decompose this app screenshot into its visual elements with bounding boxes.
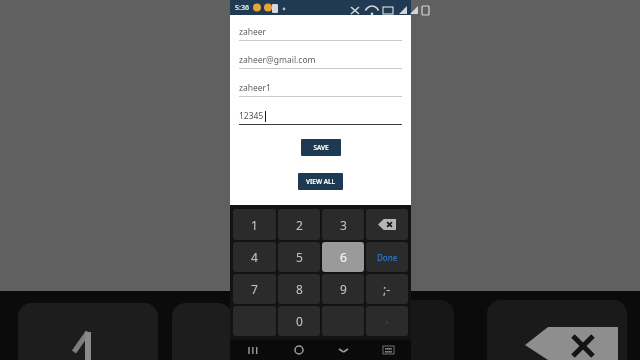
button[interactable]: Home xyxy=(276,340,321,360)
button[interactable]: zaheer@gmail.com xyxy=(239,51,402,69)
button[interactable]: 8 xyxy=(278,274,320,304)
button[interactable]: 9 xyxy=(322,274,364,304)
button[interactable]: 3 xyxy=(322,209,364,240)
button[interactable]: 2 xyxy=(278,209,320,240)
staticText: 6 xyxy=(340,249,347,265)
staticText: 9 xyxy=(340,281,347,297)
staticText: 7 xyxy=(251,281,258,297)
staticText: 4 xyxy=(251,249,258,265)
button[interactable]: ;- xyxy=(366,274,408,304)
button[interactable]: SAVE xyxy=(301,139,341,156)
button[interactable]: Recents xyxy=(230,340,276,360)
staticText: zaheer@gmail.com xyxy=(239,54,316,66)
button[interactable]: 6 xyxy=(322,242,364,272)
staticText: ;- xyxy=(383,281,391,297)
staticText: 8 xyxy=(296,281,303,297)
button[interactable]: 0 xyxy=(278,306,320,336)
staticText: 0 xyxy=(296,313,303,329)
button[interactable]: Done xyxy=(366,242,408,272)
button[interactable]: 12345 xyxy=(239,107,402,125)
staticText: 3 xyxy=(340,217,347,233)
button[interactable]: 4 xyxy=(233,242,276,272)
staticText: SAVE xyxy=(313,143,329,152)
button[interactable]: Hide keyboard xyxy=(321,340,366,360)
staticText: 2 xyxy=(296,217,303,233)
button[interactable]: Switch keyboard xyxy=(366,340,411,360)
staticText: 12345 xyxy=(239,110,264,122)
button[interactable]: 7 xyxy=(233,274,276,304)
button[interactable]: 1 xyxy=(233,209,276,240)
staticText: zaheer1 xyxy=(239,82,271,94)
button[interactable]: zaheer1 xyxy=(239,79,402,97)
button[interactable]: 5 xyxy=(278,242,320,272)
staticText: 5 xyxy=(296,249,303,265)
staticText: 1 xyxy=(251,217,258,233)
staticText: VIEW ALL xyxy=(306,177,335,186)
staticText: 5:36 xyxy=(235,3,249,13)
button[interactable]: Backspace xyxy=(366,209,408,240)
button[interactable]: zaheer xyxy=(239,23,402,41)
staticText: Done xyxy=(377,252,398,263)
staticText: zaheer xyxy=(239,26,267,38)
button[interactable]: VIEW ALL xyxy=(298,173,343,190)
